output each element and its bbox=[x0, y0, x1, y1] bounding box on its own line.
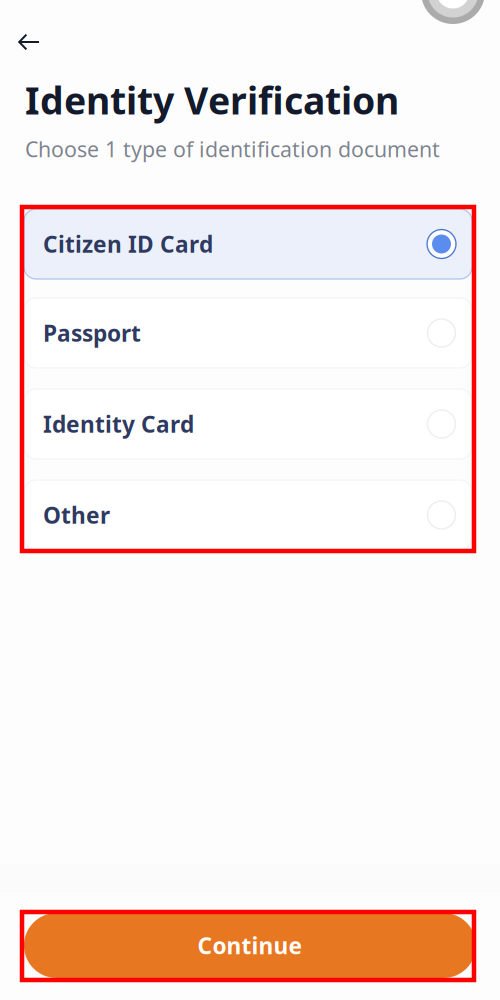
button[interactable]: Passport bbox=[24, 298, 472, 368]
staticText: Identity Verification bbox=[25, 75, 399, 125]
button[interactable]: Other bbox=[24, 480, 472, 550]
staticText: Choose 1 type of identification document bbox=[25, 135, 440, 163]
button[interactable]: Back bbox=[2, 16, 56, 68]
staticText: Passport bbox=[43, 318, 141, 348]
button[interactable]: Continue bbox=[24, 913, 476, 978]
staticText: Identity Card bbox=[43, 409, 194, 439]
staticText: Continue bbox=[197, 930, 302, 960]
button[interactable]: Citizen ID Card bbox=[24, 209, 472, 279]
staticText: Other bbox=[43, 500, 110, 530]
button[interactable]: Identity Card bbox=[24, 389, 472, 459]
staticText: Citizen ID Card bbox=[43, 229, 213, 259]
